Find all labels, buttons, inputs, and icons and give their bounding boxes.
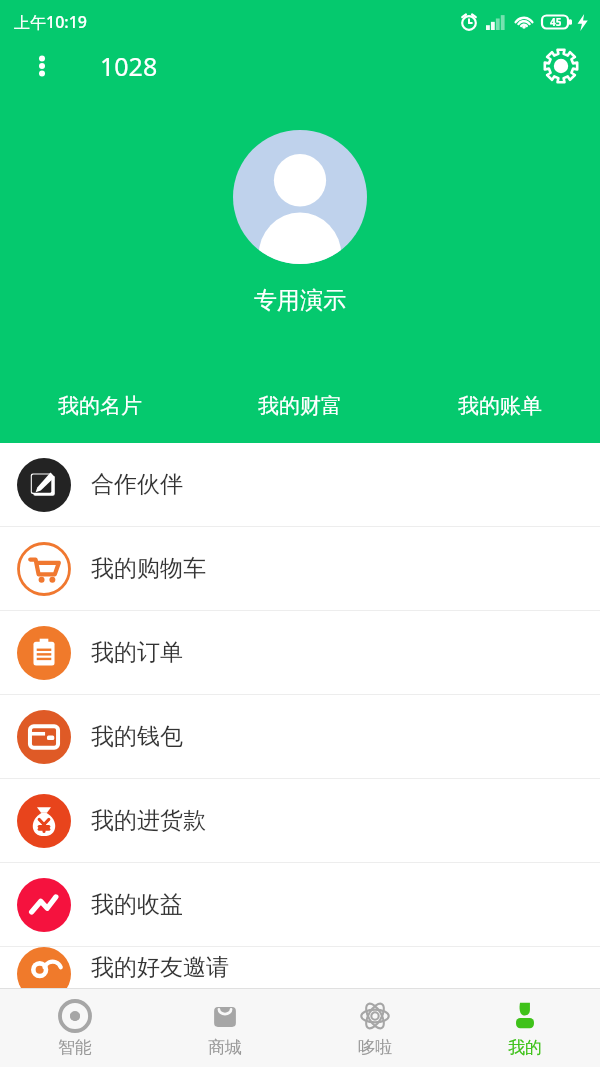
button[interactable]: 我的 [450,989,600,1067]
staticText: 我的名片 [58,393,142,419]
staticText: 我的好友邀请 [91,953,229,982]
button[interactable]: 我的账单 [400,378,600,434]
staticText: 1028 [100,49,158,83]
button[interactable]: 哆啦 [300,989,450,1067]
button[interactable]: 合作伙伴 [0,443,600,526]
staticText: 专用演示 [254,286,346,315]
staticText: 我的钱包 [91,722,183,751]
staticText: 上午10:19 [14,11,87,33]
staticText: 哆啦 [358,1037,392,1058]
button[interactable]: Profile avatar [233,130,367,264]
staticText: 商城 [208,1037,242,1058]
button[interactable]: 我的钱包 [0,695,600,778]
staticText: 我的收益 [91,890,183,919]
button[interactable]: 我的名片 [0,378,200,434]
button[interactable]: More options [22,46,62,86]
staticText: 我的购物车 [91,554,206,583]
button[interactable]: 我的购物车 [0,527,600,610]
button[interactable]: 智能 [0,989,150,1067]
staticText: 我的订单 [91,638,183,667]
button[interactable]: 我的收益 [0,863,600,946]
staticText: 我的 [508,1037,542,1058]
staticText: 我的进货款 [91,806,206,835]
button[interactable]: 我的好友邀请 [0,947,600,988]
button[interactable]: 商城 [150,989,300,1067]
staticText: 合作伙伴 [91,470,183,499]
button[interactable]: 我的订单 [0,611,600,694]
staticText: 45 [550,15,562,29]
staticText: 我的财富 [258,393,342,419]
button[interactable]: Settings [538,44,584,88]
button[interactable]: 我的财富 [200,378,400,434]
staticText: 智能 [58,1037,92,1058]
staticText: 我的账单 [458,393,542,419]
button[interactable]: 我的进货款 [0,779,600,862]
